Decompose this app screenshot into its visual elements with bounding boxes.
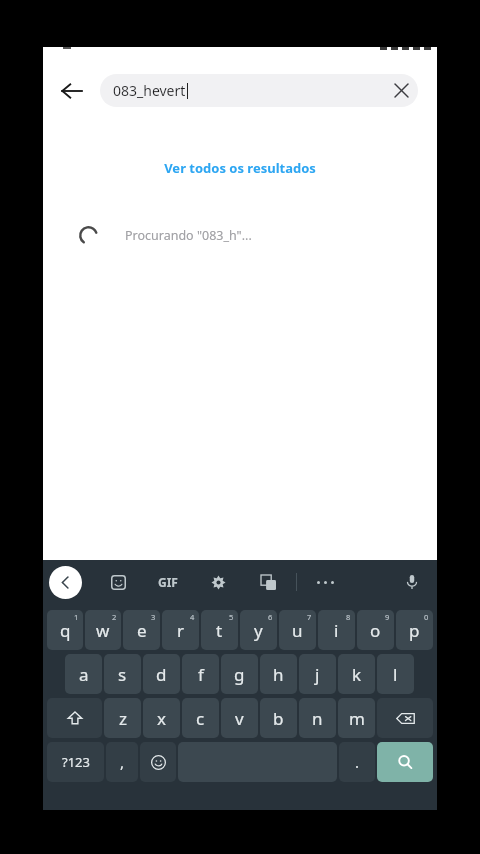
staticText: t (216, 619, 223, 642)
button[interactable]: Stickers (104, 567, 132, 597)
button[interactable]: x (143, 698, 180, 738)
button[interactable]: m (338, 698, 375, 738)
button[interactable]: z (104, 698, 141, 738)
staticText: 7 (307, 612, 312, 622)
button[interactable]: Translate (254, 567, 282, 597)
button[interactable]: k (338, 654, 375, 694)
button[interactable]: r (162, 610, 199, 650)
button[interactable]: f (182, 654, 219, 694)
staticText: 4 (190, 612, 195, 622)
staticText: 9 (385, 612, 390, 622)
staticText: r (177, 619, 185, 642)
button[interactable]: s (104, 654, 141, 694)
button[interactable]: Voice input (398, 567, 426, 597)
button[interactable]: b (260, 698, 297, 738)
staticText: k (352, 663, 362, 686)
button[interactable]: Emoji (140, 742, 176, 782)
staticText: 5 (229, 612, 234, 622)
staticText: i (334, 619, 339, 642)
button[interactable]: ?123 (47, 742, 104, 782)
staticText: 3 (151, 612, 156, 622)
button[interactable]: j (299, 654, 336, 694)
button[interactable]: GIF (154, 567, 182, 597)
button[interactable]: l (377, 654, 414, 694)
staticText: x (157, 707, 166, 730)
button[interactable]: Settings (204, 567, 232, 597)
button[interactable]: Close toolbar (49, 566, 82, 599)
button[interactable]: Comma (106, 742, 138, 782)
button[interactable]: 083_hevert (100, 74, 418, 107)
button[interactable]: v (221, 698, 258, 738)
button[interactable]: Period (339, 742, 375, 782)
staticText: 2 (112, 612, 117, 622)
staticText: 1 (74, 612, 79, 622)
button[interactable]: d (143, 654, 180, 694)
staticText: v (235, 707, 244, 730)
staticText: , (120, 752, 125, 772)
staticText: y (254, 619, 263, 642)
staticText: e (137, 619, 147, 642)
staticText: 0 (424, 612, 429, 622)
staticText: GIF (158, 574, 178, 590)
button[interactable]: Shift (47, 698, 102, 738)
staticText: g (234, 663, 245, 686)
button[interactable]: w (85, 610, 121, 650)
button[interactable]: Clear search (384, 74, 418, 107)
staticText: p (409, 619, 420, 642)
staticText: . (355, 752, 360, 772)
staticText: f (198, 663, 204, 686)
staticText: u (292, 619, 303, 642)
button[interactable]: e (123, 610, 160, 650)
staticText: j (315, 663, 320, 686)
staticText: o (370, 619, 381, 642)
staticText: c (196, 707, 205, 730)
staticText: s (118, 663, 127, 686)
button[interactable]: u (279, 610, 316, 650)
staticText: 083_hevert (113, 81, 186, 100)
button[interactable]: c (182, 698, 219, 738)
button[interactable]: Backspace (377, 698, 433, 738)
staticText: w (96, 619, 110, 642)
button[interactable]: g (221, 654, 258, 694)
staticText: a (79, 663, 89, 686)
button[interactable]: q (47, 610, 83, 650)
staticText: h (273, 663, 284, 686)
button[interactable]: i (318, 610, 355, 650)
staticText: d (156, 663, 167, 686)
button[interactable]: More options (311, 567, 339, 597)
staticText: 6 (268, 612, 273, 622)
button[interactable]: Search (377, 742, 433, 782)
staticText: z (119, 707, 127, 730)
button[interactable]: p (396, 610, 433, 650)
button[interactable]: t (201, 610, 238, 650)
staticText: m (349, 707, 365, 730)
button[interactable]: n (299, 698, 336, 738)
button[interactable]: a (65, 654, 102, 694)
staticText: n (312, 707, 323, 730)
button[interactable]: o (357, 610, 394, 650)
staticText: q (60, 619, 71, 642)
button[interactable]: h (260, 654, 297, 694)
button[interactable]: Ver todos os resultados (43, 155, 437, 181)
button[interactable]: Back (43, 61, 100, 121)
staticText: b (273, 707, 284, 730)
staticText: l (393, 663, 398, 686)
staticText: Procurando "083_h"... (125, 227, 252, 244)
button[interactable]: y (240, 610, 277, 650)
staticText: Ver todos os resultados (164, 159, 316, 177)
staticText: 8 (346, 612, 351, 622)
staticText: ?123 (62, 753, 90, 771)
